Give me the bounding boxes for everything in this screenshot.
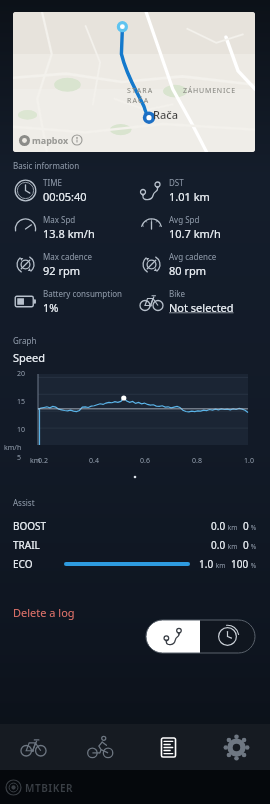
staticText: 0 <box>243 538 249 552</box>
button[interactable]: Bike <box>139 288 270 315</box>
staticText: 1.01 km <box>169 189 210 204</box>
staticText: 0.0 <box>211 519 226 533</box>
staticText: km <box>30 456 41 466</box>
staticText: km <box>214 561 226 570</box>
staticText: 80 rpm <box>169 263 207 278</box>
staticText: DST <box>169 177 184 188</box>
staticText: 0.8 <box>192 456 202 466</box>
staticText: 1.0 <box>244 456 254 466</box>
staticText: Max Spd <box>43 214 76 225</box>
staticText: mapbox <box>32 134 69 146</box>
staticText: 10.7 km/h <box>169 226 221 241</box>
staticText: Basic information <box>13 160 80 171</box>
staticText: 10 <box>17 425 26 435</box>
staticText: 0.2 <box>38 456 48 466</box>
staticText: % <box>249 523 257 532</box>
staticText: 20 <box>17 369 26 379</box>
staticText: Assist <box>13 497 35 508</box>
staticText: Avg Spd <box>169 214 200 225</box>
button[interactable]: Route map <box>13 12 255 152</box>
staticText: Rača <box>153 107 178 122</box>
button[interactable]: Time view <box>200 620 255 653</box>
button[interactable]: BOOST <box>0 516 270 535</box>
staticText: 0.0 <box>211 538 226 552</box>
button[interactable]: Avg cadence <box>139 251 270 278</box>
staticText: Not selected <box>169 300 234 315</box>
staticText: 0.4 <box>89 456 99 466</box>
staticText: ZÁHUMENICE <box>183 86 237 96</box>
button[interactable]: ECO <box>0 554 270 573</box>
staticText: 5 <box>17 453 22 463</box>
staticText: STARA RAČA <box>127 86 154 106</box>
staticText: Graph <box>13 335 37 346</box>
staticText: Bike <box>169 288 186 299</box>
button[interactable]: Delete a log <box>13 605 75 620</box>
staticText: 00:05:40 <box>43 189 87 204</box>
button[interactable]: TIME <box>13 177 135 204</box>
staticText: km <box>226 542 238 551</box>
staticText: 1.0 <box>199 557 214 571</box>
staticText: % <box>249 561 257 570</box>
staticText: km/h <box>4 443 22 453</box>
staticText: 13.8 km/h <box>43 226 95 241</box>
staticText: TIME <box>43 177 62 188</box>
staticText: 1% <box>43 300 59 315</box>
staticText: Avg cadence <box>169 251 217 262</box>
staticText: 100 <box>231 557 249 571</box>
button[interactable]: DST <box>139 177 270 204</box>
staticText: TRAIL <box>13 538 58 552</box>
button[interactable]: Route view <box>146 620 200 653</box>
button[interactable]: Avg Spd <box>139 214 270 241</box>
button[interactable]: Max Spd <box>13 214 135 241</box>
staticText: BOOST <box>13 519 58 533</box>
staticText: 0.6 <box>140 456 150 466</box>
staticText: 15 <box>17 397 26 407</box>
staticText: % <box>249 542 257 551</box>
staticText: Max cadence <box>43 251 93 262</box>
button[interactable]: Max cadence <box>13 251 135 278</box>
staticText: ECO <box>13 557 58 571</box>
button[interactable]: Battery consumption <box>13 288 135 315</box>
button[interactable]: Bikes <box>0 724 67 770</box>
button[interactable]: Settings <box>202 724 270 770</box>
staticText: 0 <box>243 519 249 533</box>
button[interactable]: Ride <box>67 724 134 770</box>
staticText: Speed <box>13 350 45 365</box>
staticText: 92 rpm <box>43 263 81 278</box>
staticText: MTBIKER <box>25 781 74 795</box>
staticText: Battery consumption <box>43 288 122 299</box>
button[interactable]: TRAIL <box>0 535 270 554</box>
button[interactable]: Logs <box>134 724 202 770</box>
staticText: km <box>226 523 238 532</box>
